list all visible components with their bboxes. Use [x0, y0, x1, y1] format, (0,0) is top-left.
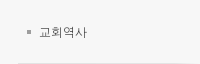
staticText: 교회역사	[39, 24, 87, 39]
button[interactable]: 교회역사	[0, 0, 200, 64]
